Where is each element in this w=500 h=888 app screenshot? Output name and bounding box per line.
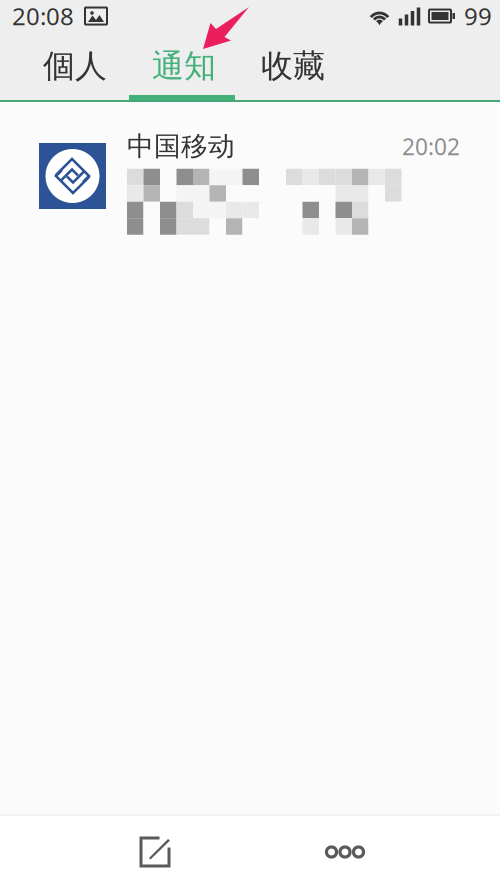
staticText: 個人 — [43, 46, 107, 86]
staticText: 99 — [464, 0, 492, 32]
staticText: 收藏 — [261, 46, 325, 86]
staticText: 20:08 — [12, 0, 74, 32]
button[interactable]: Compose — [120, 816, 190, 888]
button[interactable]: 收藏 — [261, 46, 325, 86]
staticText: 20:02 — [402, 131, 460, 161]
button[interactable]: More — [310, 816, 380, 888]
button[interactable]: 通知 — [152, 46, 216, 86]
staticText: 通知 — [152, 46, 216, 86]
button[interactable]: 個人 — [43, 46, 107, 86]
button[interactable]: 中国移动 — [0, 102, 500, 235]
staticText: 中国移动 — [127, 130, 235, 163]
